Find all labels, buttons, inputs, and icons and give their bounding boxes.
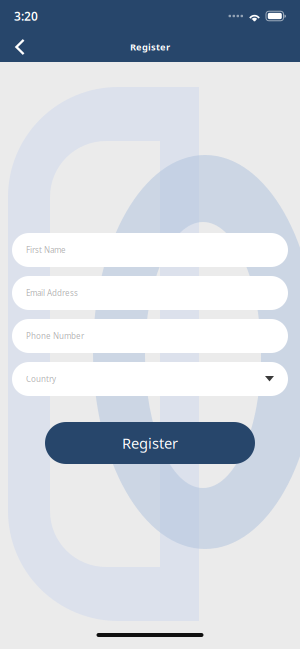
button[interactable]: First Name <box>12 233 288 267</box>
button[interactable]: Email Address <box>12 276 288 310</box>
staticText: First Name <box>26 245 66 255</box>
staticText: 3:20 <box>14 8 38 24</box>
staticText: Email Address <box>26 288 78 298</box>
staticText: Register <box>122 433 178 453</box>
staticText: Register <box>130 41 170 53</box>
button[interactable]: Country <box>12 362 288 396</box>
button[interactable]: Back <box>0 32 36 61</box>
button[interactable]: Phone Number <box>12 319 288 353</box>
staticText: Country <box>26 374 56 384</box>
staticText: Phone Number <box>26 331 84 341</box>
button[interactable]: Register <box>45 422 255 464</box>
